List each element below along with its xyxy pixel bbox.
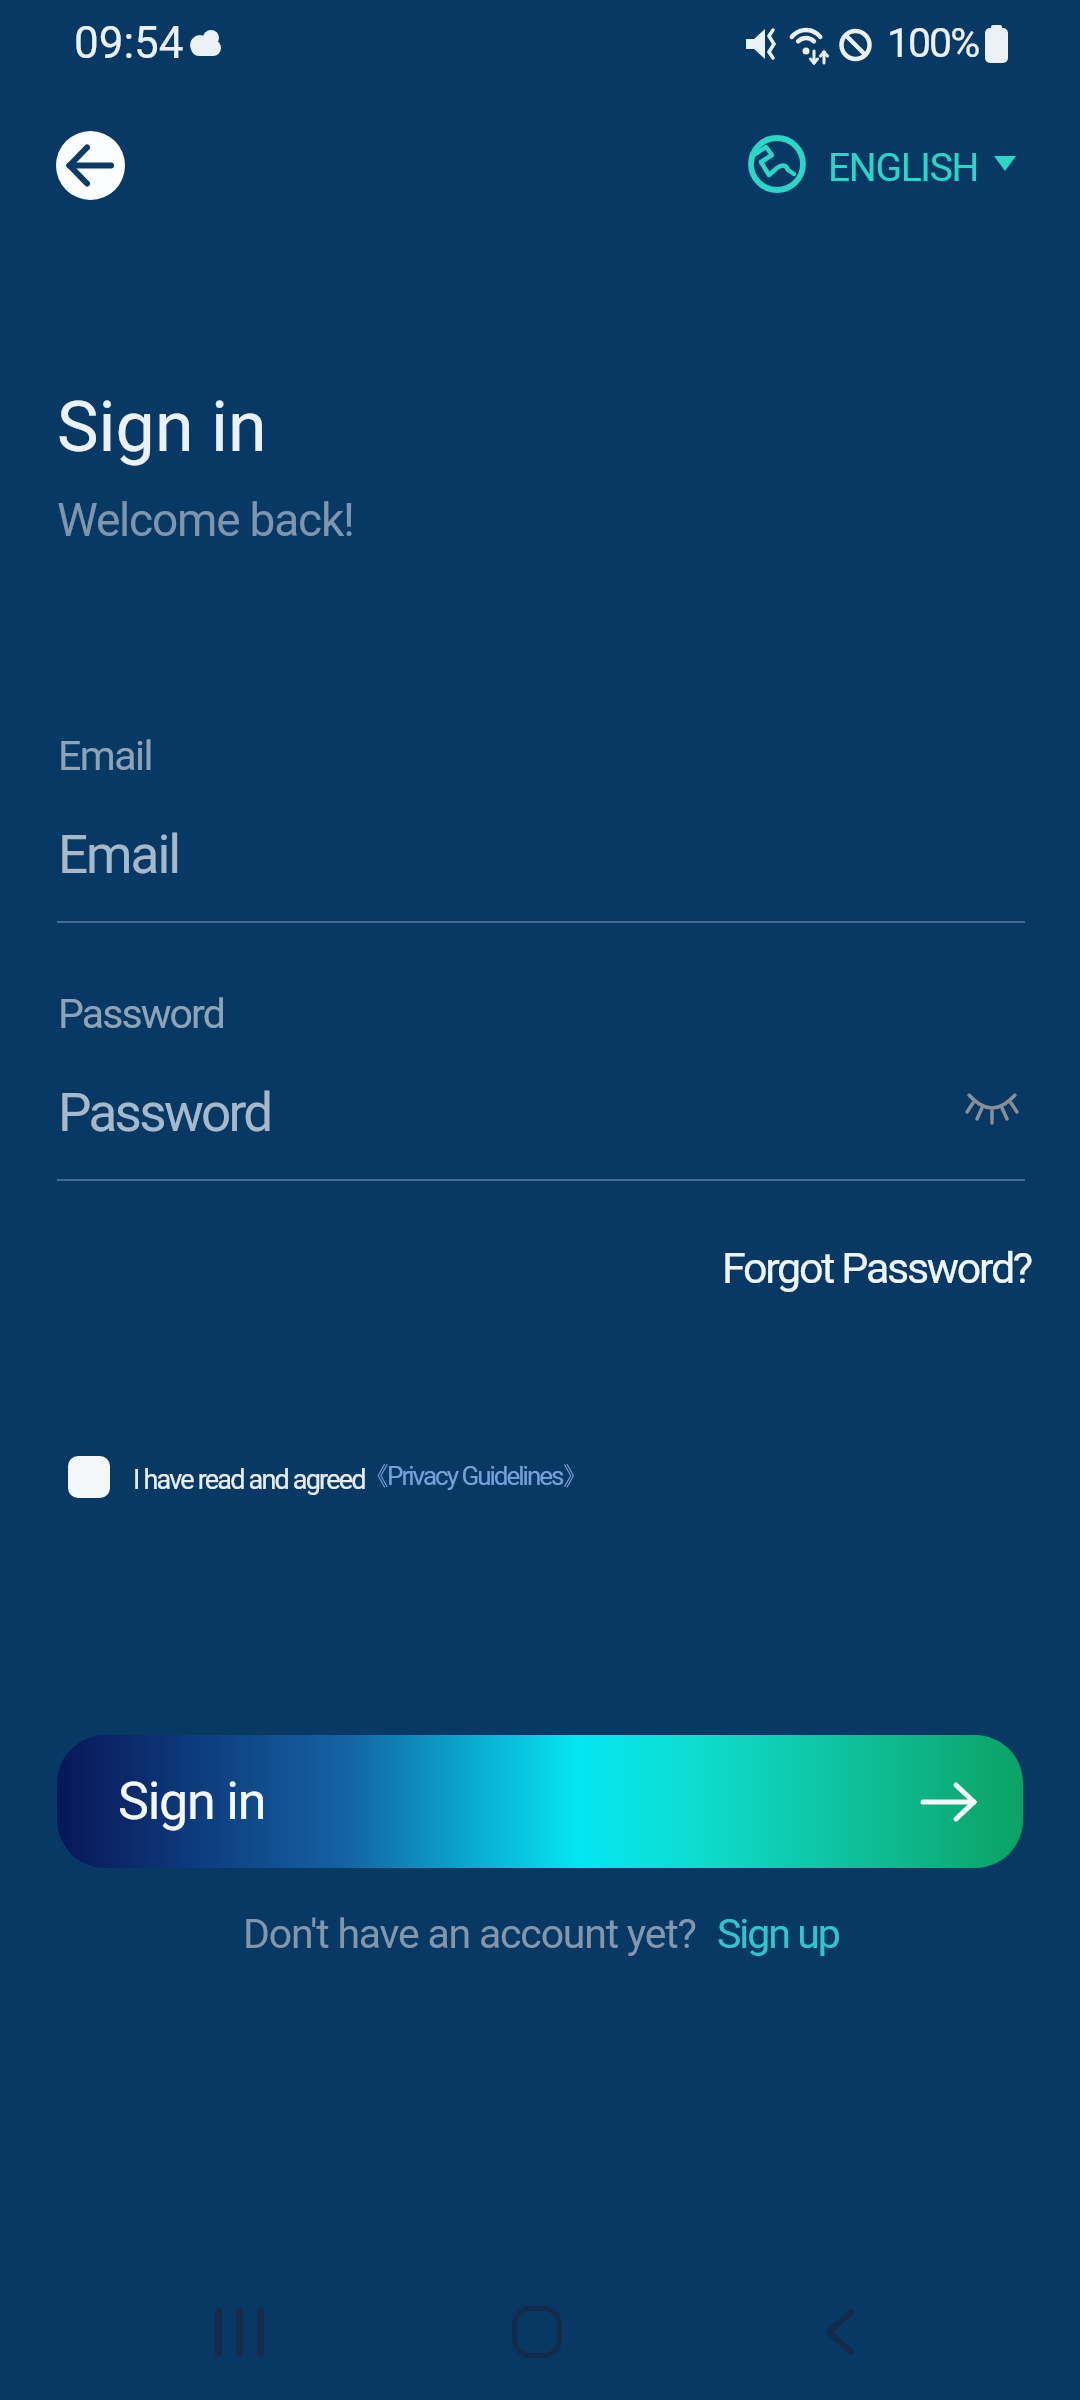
- staticText: I have read and agreed: [133, 1464, 365, 1496]
- staticText: Password: [58, 990, 224, 1038]
- button[interactable]: Sign in: [57, 1735, 1023, 1868]
- button[interactable]: [966, 1090, 1018, 1138]
- button[interactable]: [215, 2308, 266, 2357]
- staticText: Email: [58, 732, 152, 780]
- button[interactable]: Forgot Password?: [714, 1238, 1034, 1304]
- staticText: 09:54: [74, 17, 184, 69]
- staticText: Sign in: [57, 386, 267, 468]
- staticText: Password: [58, 1082, 271, 1144]
- staticText: Email: [58, 824, 180, 886]
- staticText: Sign up: [717, 1910, 839, 1958]
- button[interactable]: [68, 1456, 110, 1498]
- button[interactable]: Sign up: [710, 1902, 850, 1964]
- staticText: Sign in: [118, 1771, 266, 1832]
- staticText: Welcome back!: [57, 493, 354, 547]
- staticText: 100%: [887, 19, 979, 67]
- button[interactable]: [821, 2310, 857, 2354]
- staticText: Don't have an account yet?: [243, 1910, 696, 1958]
- button[interactable]: 《Privacy Guidelines》: [363, 1456, 653, 1502]
- staticText: Forgot Password?: [722, 1243, 1031, 1293]
- button[interactable]: [741, 127, 1031, 203]
- button[interactable]: [56, 131, 125, 200]
- staticText: ENGLISH: [828, 145, 979, 191]
- button[interactable]: [512, 2306, 562, 2358]
- staticText: 《Privacy Guidelines》: [363, 1460, 587, 1493]
